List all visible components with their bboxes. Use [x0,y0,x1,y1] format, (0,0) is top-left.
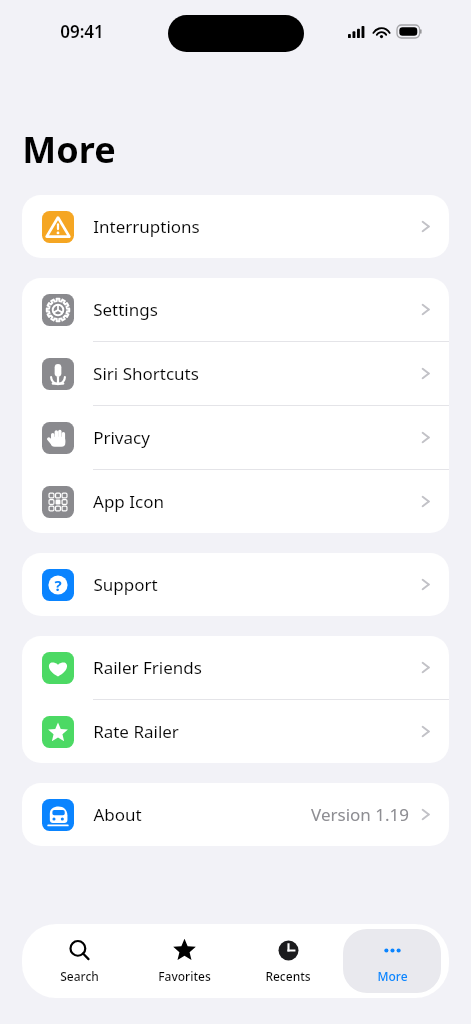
staticText: More [22,125,116,174]
staticText: App Icon [93,490,164,513]
button[interactable]: Settings [22,278,449,341]
staticText: Support [93,573,158,596]
staticText: Railer Friends [93,656,202,679]
staticText: Settings [93,298,158,321]
staticText: Version 1.19 [311,803,409,826]
staticText: Search [60,968,99,984]
button[interactable]: Recents [239,929,337,993]
button[interactable]: App Icon [22,470,449,533]
staticText: Recents [265,968,311,984]
button[interactable]: Favorites [135,929,233,993]
button[interactable]: About [22,783,449,846]
button[interactable]: Rate Railer [22,700,449,763]
staticText: ? [54,575,62,595]
button[interactable]: ? [22,553,449,616]
button[interactable]: Interruptions [22,195,449,258]
staticText: Favorites [158,968,211,984]
staticText: Interruptions [93,215,200,238]
staticText: About [93,803,142,826]
button[interactable]: Siri Shortcuts [22,342,449,405]
button[interactable]: Railer Friends [22,636,449,699]
staticText: 09:41 [60,20,104,43]
button[interactable]: Privacy [22,406,449,469]
staticText: Rate Railer [93,720,179,743]
button[interactable]: More [343,929,441,993]
staticText: More [377,968,408,984]
button[interactable]: Search [30,929,129,993]
staticText: Privacy [93,426,150,449]
staticText: Siri Shortcuts [93,362,199,385]
